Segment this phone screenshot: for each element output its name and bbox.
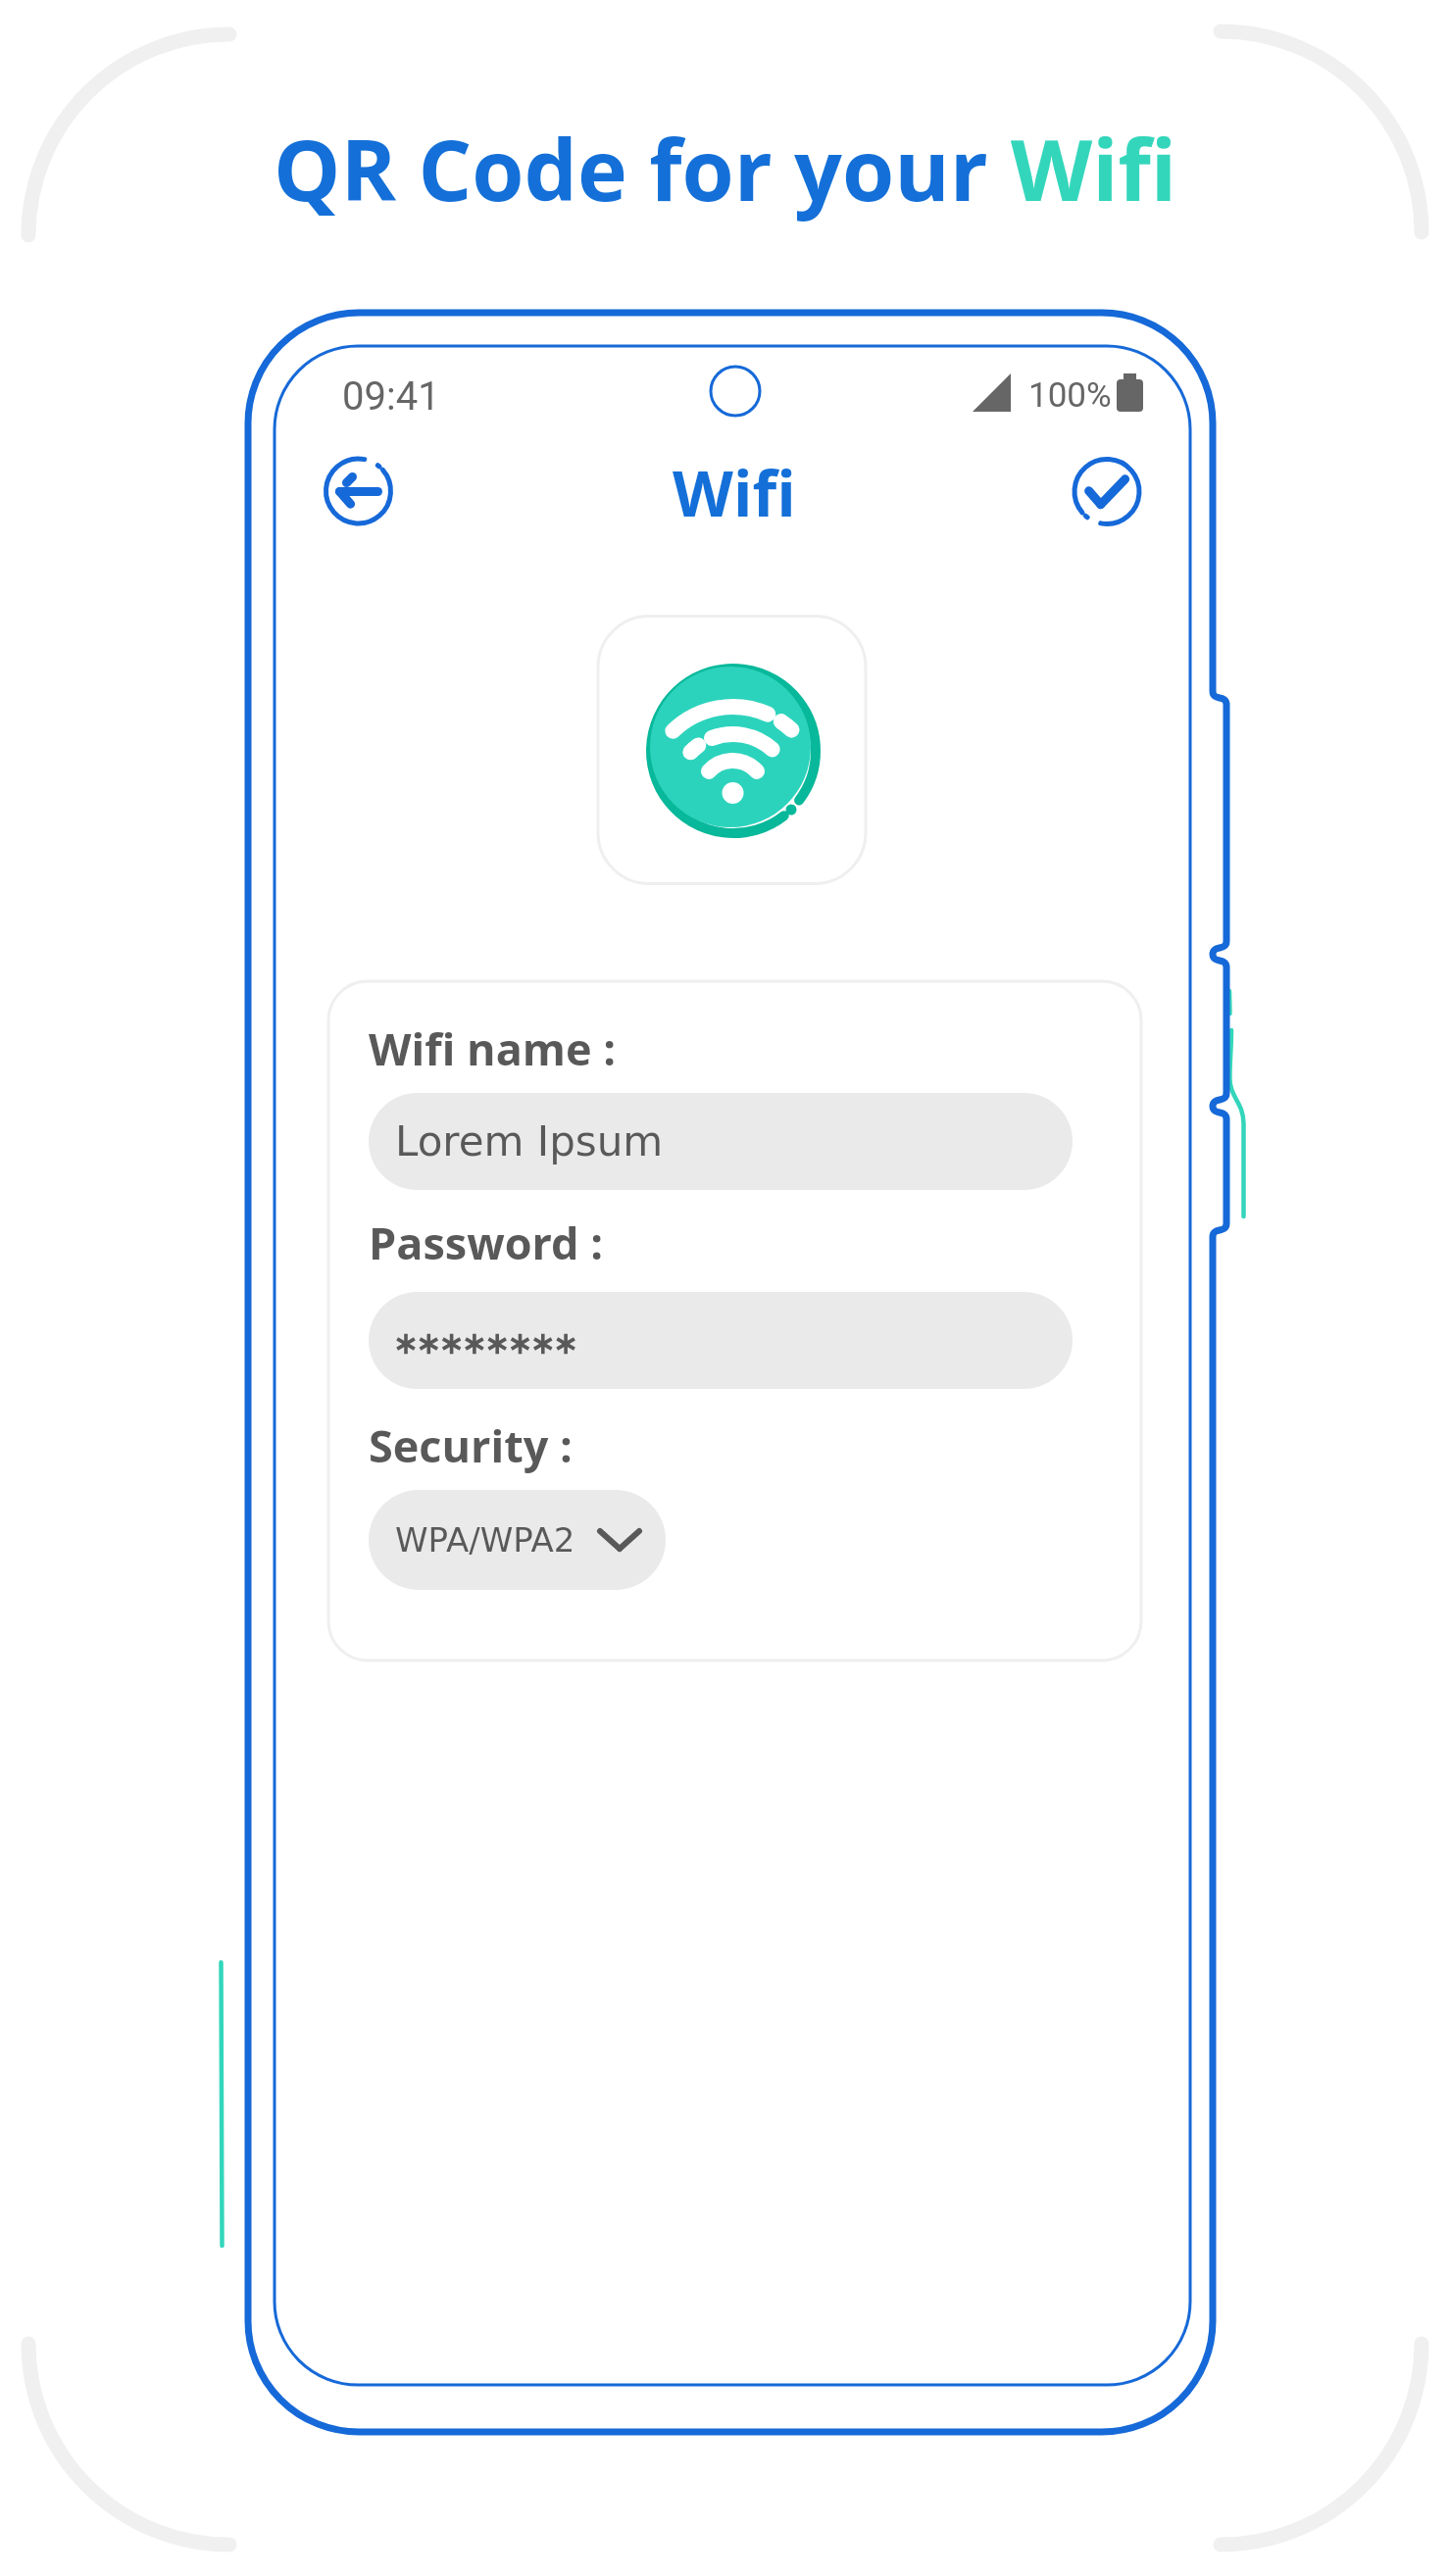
button[interactable]: Confirm bbox=[1068, 452, 1146, 530]
staticText: 09:41 bbox=[342, 373, 440, 420]
staticText: Wifi bbox=[1011, 111, 1176, 225]
staticText: Security : bbox=[369, 1415, 573, 1475]
staticText: Lorem Ipsum bbox=[395, 1117, 664, 1165]
button[interactable]: Back bbox=[319, 452, 397, 530]
button[interactable]: Password bbox=[369, 1292, 1073, 1389]
button[interactable]: Lorem Ipsum bbox=[369, 1093, 1073, 1190]
staticText: QR Code for your bbox=[274, 111, 1011, 225]
staticText: Wifi bbox=[673, 450, 796, 535]
staticText: WPA/WPA2 bbox=[395, 1520, 575, 1560]
staticText: Wifi name : bbox=[369, 1018, 617, 1078]
button[interactable]: WPA/WPA2 bbox=[369, 1490, 666, 1590]
staticText: 100% bbox=[1028, 375, 1112, 416]
staticText: Password : bbox=[369, 1213, 604, 1272]
